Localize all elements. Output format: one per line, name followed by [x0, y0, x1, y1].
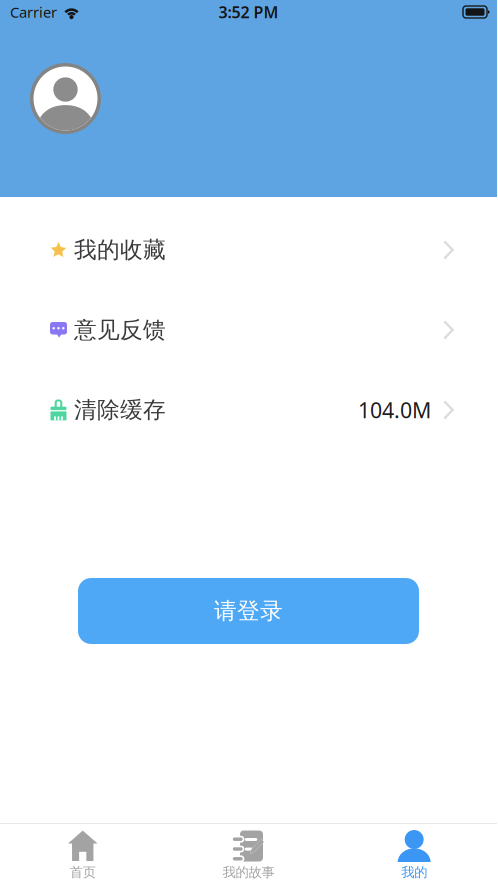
staticText: 我的 [401, 864, 427, 880]
staticText: 意见反馈 [74, 316, 166, 344]
staticText: 清除缓存 [74, 396, 166, 424]
staticText: 请登录 [214, 597, 283, 625]
staticText: 我的故事 [222, 864, 274, 880]
button[interactable]: 请登录 [78, 578, 419, 644]
button[interactable]: 我的故事 [166, 824, 331, 883]
button[interactable]: 我的收藏 [0, 210, 497, 290]
staticText: Carrier [10, 2, 57, 22]
button[interactable]: 清除缓存 [0, 370, 497, 450]
staticText: 3:52 PM [218, 1, 278, 23]
button[interactable]: 意见反馈 [0, 290, 497, 370]
button[interactable]: 我的 [331, 824, 497, 883]
staticText: 首页 [70, 864, 96, 880]
staticText: 我的收藏 [74, 236, 166, 264]
button[interactable]: 首页 [0, 824, 166, 883]
button[interactable]: Profile photo [30, 63, 101, 134]
staticText: 104.0M [358, 396, 431, 424]
